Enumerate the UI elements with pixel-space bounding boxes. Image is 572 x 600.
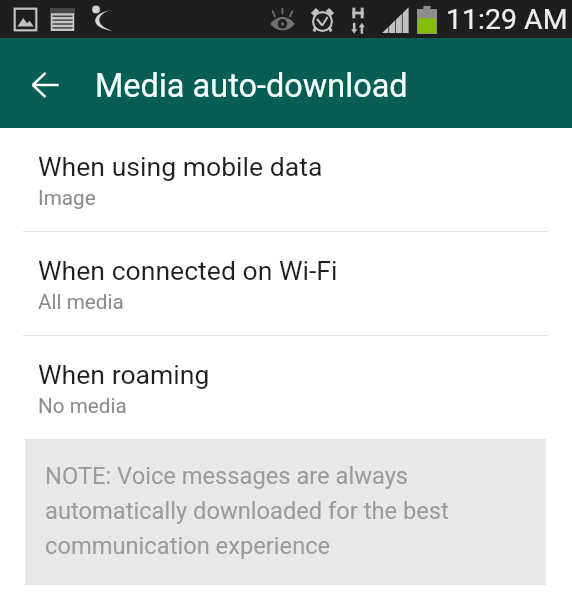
- staticText: When using mobile data: [38, 151, 323, 182]
- staticText: 11:29 AM: [446, 3, 568, 36]
- button[interactable]: Back: [21, 61, 69, 109]
- staticText: NOTE: Voice messages are always automati…: [45, 456, 542, 561]
- staticText: All media: [38, 290, 124, 314]
- staticText: When connected on Wi-Fi: [38, 255, 338, 286]
- button[interactable]: When roaming: [0, 336, 572, 439]
- staticText: Media auto-download: [95, 67, 408, 105]
- staticText: No media: [38, 394, 127, 418]
- staticText: Image: [38, 186, 96, 210]
- staticText: When roaming: [38, 359, 210, 390]
- button[interactable]: When using mobile data: [0, 128, 572, 231]
- button[interactable]: When connected on Wi-Fi: [0, 232, 572, 335]
